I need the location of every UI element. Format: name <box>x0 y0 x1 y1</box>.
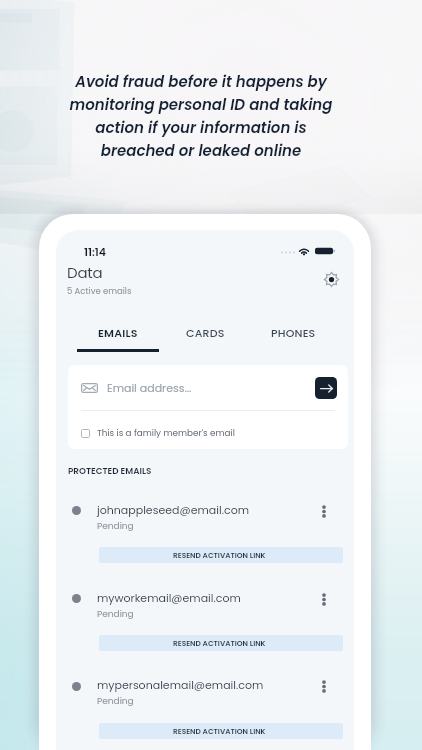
staticText: RESEND ACTIVATION LINK <box>173 638 266 648</box>
staticText: This is a family member's email <box>97 427 235 439</box>
button[interactable]: RESEND ACTIVATION LINK <box>99 723 343 739</box>
staticText: PROTECTED EMAILS <box>68 465 152 477</box>
staticText: 11:14 <box>84 244 107 259</box>
button[interactable]: More options <box>313 675 335 697</box>
staticText: Pending <box>97 608 134 621</box>
button[interactable]: CARDS <box>165 318 245 346</box>
staticText: PHONES <box>271 325 316 340</box>
staticText: RESEND ACTIVATION LINK <box>173 550 266 560</box>
button[interactable]: More options <box>313 500 335 522</box>
button[interactable]: This is a family member's email <box>81 417 337 449</box>
button[interactable]: PHONES <box>253 318 333 346</box>
button[interactable]: EMAILS <box>78 318 158 346</box>
staticText: johnappleseed@email.com <box>97 502 249 517</box>
staticText: Email address... <box>107 380 192 395</box>
button[interactable]: RESEND ACTIVATION LINK <box>99 635 343 651</box>
button[interactable]: Submit email <box>315 377 337 399</box>
staticText: Data <box>67 262 103 283</box>
staticText: 5 Active emails <box>67 285 132 297</box>
staticText: RESEND ACTIVATION LINK <box>173 726 266 736</box>
staticText: Pending <box>97 695 134 708</box>
button[interactable]: RESEND ACTIVATION LINK <box>99 547 343 563</box>
staticText: mypersonalemail@email.com <box>97 677 264 692</box>
staticText: myworkemail@email.com <box>97 590 241 605</box>
staticText: Pending <box>97 520 134 533</box>
staticText: Avoid fraud before it happens by monitor… <box>58 71 344 161</box>
button[interactable]: More options <box>313 588 335 610</box>
button[interactable]: Settings <box>318 266 344 292</box>
staticText: EMAILS <box>98 325 138 340</box>
staticText: CARDS <box>186 325 225 340</box>
